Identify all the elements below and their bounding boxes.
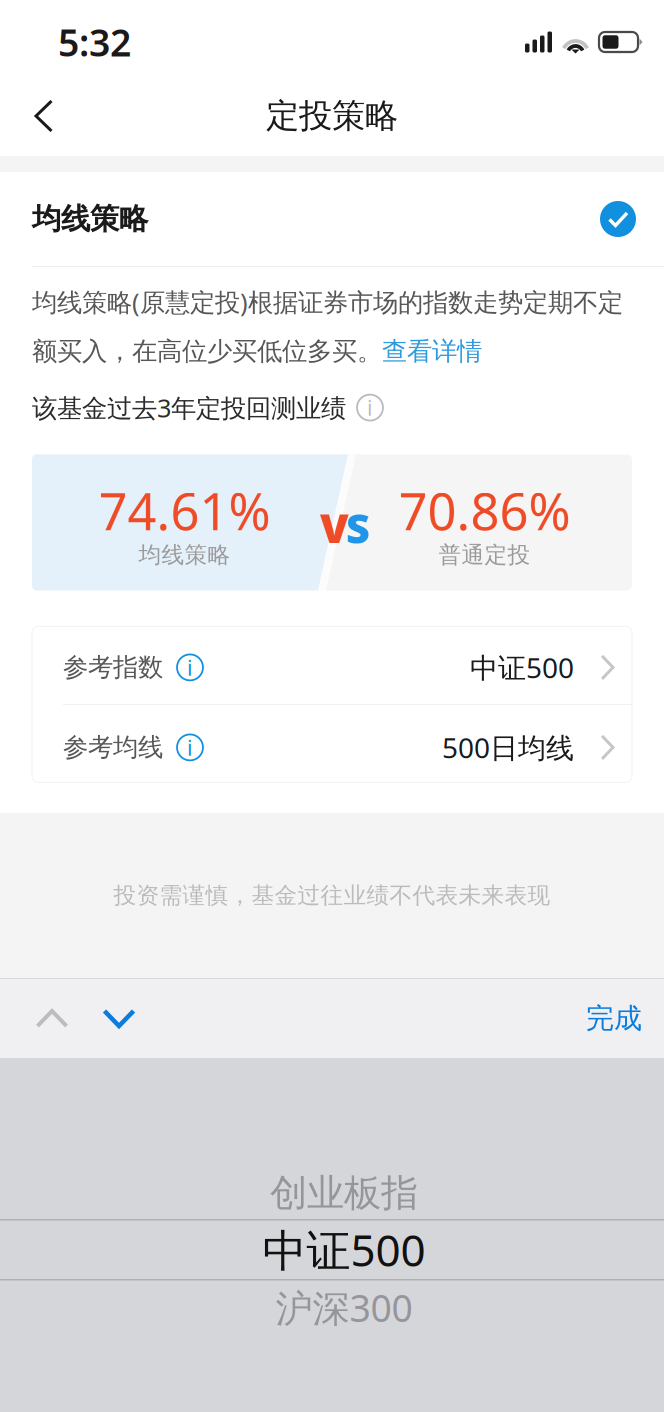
staticText: 普通定投 bbox=[438, 541, 530, 569]
staticText: 参考指数 bbox=[63, 652, 163, 683]
staticText: 定投策略 bbox=[266, 95, 398, 136]
staticText: i bbox=[187, 733, 193, 761]
staticText: V bbox=[320, 500, 349, 555]
button[interactable]: Backtest info bbox=[357, 395, 383, 421]
button[interactable]: 查看详情 bbox=[382, 336, 482, 367]
staticText: i bbox=[187, 653, 193, 681]
staticText: 额买入，在高位少买低位多买。 bbox=[32, 336, 382, 367]
staticText: 均线策略 bbox=[138, 541, 230, 569]
staticText: 中证500 bbox=[470, 649, 574, 686]
button[interactable]: Next field bbox=[90, 980, 148, 1057]
staticText: 74.61% bbox=[98, 477, 270, 544]
staticText: i bbox=[367, 393, 373, 422]
staticText: 5:32 bbox=[58, 17, 131, 67]
button[interactable]: Strategy selected bbox=[600, 201, 636, 237]
button[interactable]: 完成 bbox=[560, 976, 664, 1061]
staticText: 中证500 bbox=[262, 1220, 425, 1279]
staticText: 投资需谨慎，基金过往业绩不代表未来表现 bbox=[113, 882, 550, 909]
staticText: 查看详情 bbox=[382, 336, 482, 367]
staticText: 均线策略(原慧定投)根据证券市场的指数走势定期不定 bbox=[32, 285, 623, 319]
staticText: 均线策略 bbox=[32, 201, 148, 237]
staticText: 70.86% bbox=[398, 477, 570, 544]
staticText: S bbox=[346, 500, 370, 555]
staticText: 参考均线 bbox=[63, 732, 163, 763]
staticText: 该基金过去3年定投回测业绩 bbox=[32, 391, 346, 424]
button[interactable]: 参考均线 bbox=[32, 705, 632, 784]
staticText: 完成 bbox=[586, 1001, 642, 1036]
staticText: 沪深300 bbox=[275, 1283, 412, 1332]
button[interactable]: 参考指数 bbox=[32, 625, 632, 705]
button[interactable]: Back bbox=[13, 85, 75, 147]
staticText: 创业板指 bbox=[270, 1170, 418, 1216]
staticText: 500日均线 bbox=[442, 729, 574, 766]
button[interactable]: Previous field bbox=[0, 980, 90, 1057]
